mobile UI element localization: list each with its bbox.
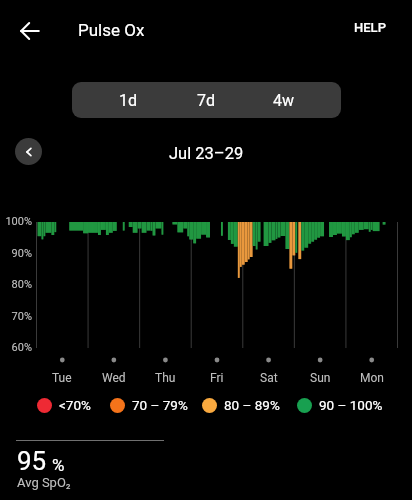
staticText: 80% — [11, 278, 32, 291]
staticText: Sat — [260, 371, 278, 385]
staticText: Sun — [310, 371, 331, 385]
staticText: 7d — [197, 91, 216, 110]
button[interactable]: 4w — [245, 82, 323, 118]
staticText: Jul 23–29 — [169, 144, 244, 163]
button[interactable]: 90 – 100% — [297, 397, 383, 413]
staticText: Avg SpO₂ — [17, 475, 71, 490]
staticText: HELP — [354, 20, 386, 35]
button[interactable]: <70% — [37, 397, 91, 413]
button[interactable]: Previous week — [15, 138, 42, 165]
staticText: 70 – 79% — [132, 397, 188, 413]
button[interactable]: 1d — [90, 82, 167, 118]
staticText: 95 — [17, 446, 47, 476]
staticText: Tue — [52, 371, 72, 385]
staticText: 70% — [11, 310, 32, 323]
staticText: Thu — [155, 371, 176, 385]
staticText: Pulse Ox — [78, 20, 145, 40]
button[interactable]: 7d — [167, 82, 245, 118]
button[interactable]: 70 – 79% — [110, 397, 188, 413]
staticText: Mon — [360, 371, 384, 385]
staticText: 4w — [273, 91, 295, 110]
staticText: % — [52, 455, 65, 475]
staticText: Wed — [102, 371, 126, 385]
staticText: <70% — [59, 397, 91, 413]
staticText: 90 – 100% — [319, 397, 383, 413]
staticText: 1d — [119, 91, 138, 110]
button[interactable]: Back — [6, 7, 54, 55]
staticText: 80 – 89% — [224, 397, 280, 413]
staticText: Fri — [210, 371, 224, 385]
staticText: 60% — [11, 341, 32, 354]
staticText: 100% — [5, 215, 32, 228]
staticText: 90% — [11, 247, 32, 260]
button[interactable]: 80 – 89% — [202, 397, 280, 413]
button[interactable]: HELP — [352, 17, 388, 38]
